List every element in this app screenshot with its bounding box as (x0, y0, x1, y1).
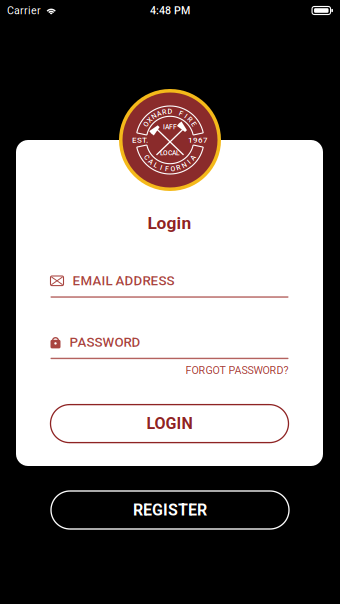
staticText: R (167, 164, 172, 173)
staticText (169, 107, 171, 115)
staticText: X (167, 107, 172, 115)
staticText: I (169, 164, 171, 173)
staticText: A (167, 107, 172, 115)
staticText: I (169, 164, 171, 173)
staticText: O (167, 107, 172, 115)
staticText: REGISTER (133, 501, 207, 519)
staticText: I (169, 107, 171, 115)
staticText: N (167, 164, 172, 173)
staticText: F (168, 164, 172, 173)
staticText: D (167, 107, 172, 115)
staticText: Carrier (7, 4, 41, 17)
staticText: 1967 (188, 135, 208, 145)
staticText: 4:48 PM (150, 4, 190, 17)
staticText: EST. (132, 135, 148, 145)
staticText: IAFF (163, 123, 177, 131)
staticText: F (168, 107, 172, 115)
staticText: LOCAL (160, 149, 180, 157)
staticText: PASSWORD (69, 334, 140, 350)
staticText: EMAIL ADDRESS (72, 273, 174, 289)
staticText: A (167, 164, 172, 173)
staticText: L (168, 164, 172, 173)
staticText: R (167, 107, 172, 115)
staticText: FORGOT PASSWORD? (185, 364, 288, 377)
button[interactable]: REGISTER (51, 491, 289, 529)
staticText: A (167, 164, 172, 173)
staticText: LOGIN (146, 414, 192, 433)
staticText: O (167, 164, 172, 173)
staticText: N (167, 107, 172, 115)
staticText: Login (147, 213, 191, 233)
staticText: C (167, 164, 172, 173)
button[interactable]: LOGIN (50, 405, 288, 443)
staticText: R (167, 107, 172, 115)
button[interactable]: FORGOT PASSWORD? (185, 364, 288, 377)
staticText: E (168, 107, 172, 115)
